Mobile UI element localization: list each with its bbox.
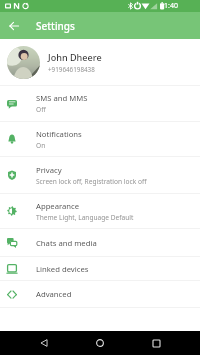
staticText: Screen lock off, Registration lock off bbox=[36, 177, 147, 186]
button[interactable]: Appearance bbox=[0, 194, 200, 228]
button[interactable]: Chats and media bbox=[0, 229, 200, 256]
button[interactable]: Recents bbox=[144, 331, 168, 355]
button[interactable]: Back bbox=[32, 331, 56, 355]
staticText: Advanced bbox=[36, 289, 72, 299]
button[interactable]: Home bbox=[88, 331, 112, 355]
staticText: John Dheere bbox=[48, 51, 102, 63]
staticText: Notifications bbox=[36, 129, 82, 139]
staticText: Settings bbox=[36, 19, 75, 33]
button[interactable]: Notifications bbox=[0, 122, 200, 156]
button[interactable]: Linked devices bbox=[0, 257, 200, 280]
staticText: +919646198438 bbox=[48, 65, 95, 74]
staticText: Privacy bbox=[36, 165, 62, 175]
staticText: Off bbox=[36, 105, 46, 114]
staticText: 1:40 bbox=[164, 1, 178, 11]
button[interactable]: Back bbox=[0, 12, 28, 39]
button[interactable]: SMS and MMS bbox=[0, 86, 200, 121]
staticText: SMS and MMS bbox=[36, 93, 88, 103]
button[interactable]: Privacy bbox=[0, 157, 200, 193]
staticText: Theme Light, Language Default bbox=[36, 213, 134, 222]
button[interactable]: John Dheere bbox=[0, 39, 200, 85]
staticText: Appearance bbox=[36, 201, 80, 211]
staticText: Linked devices bbox=[36, 264, 89, 274]
staticText: Chats and media bbox=[36, 238, 97, 248]
button[interactable]: Advanced bbox=[0, 281, 200, 307]
staticText: On bbox=[36, 141, 46, 150]
